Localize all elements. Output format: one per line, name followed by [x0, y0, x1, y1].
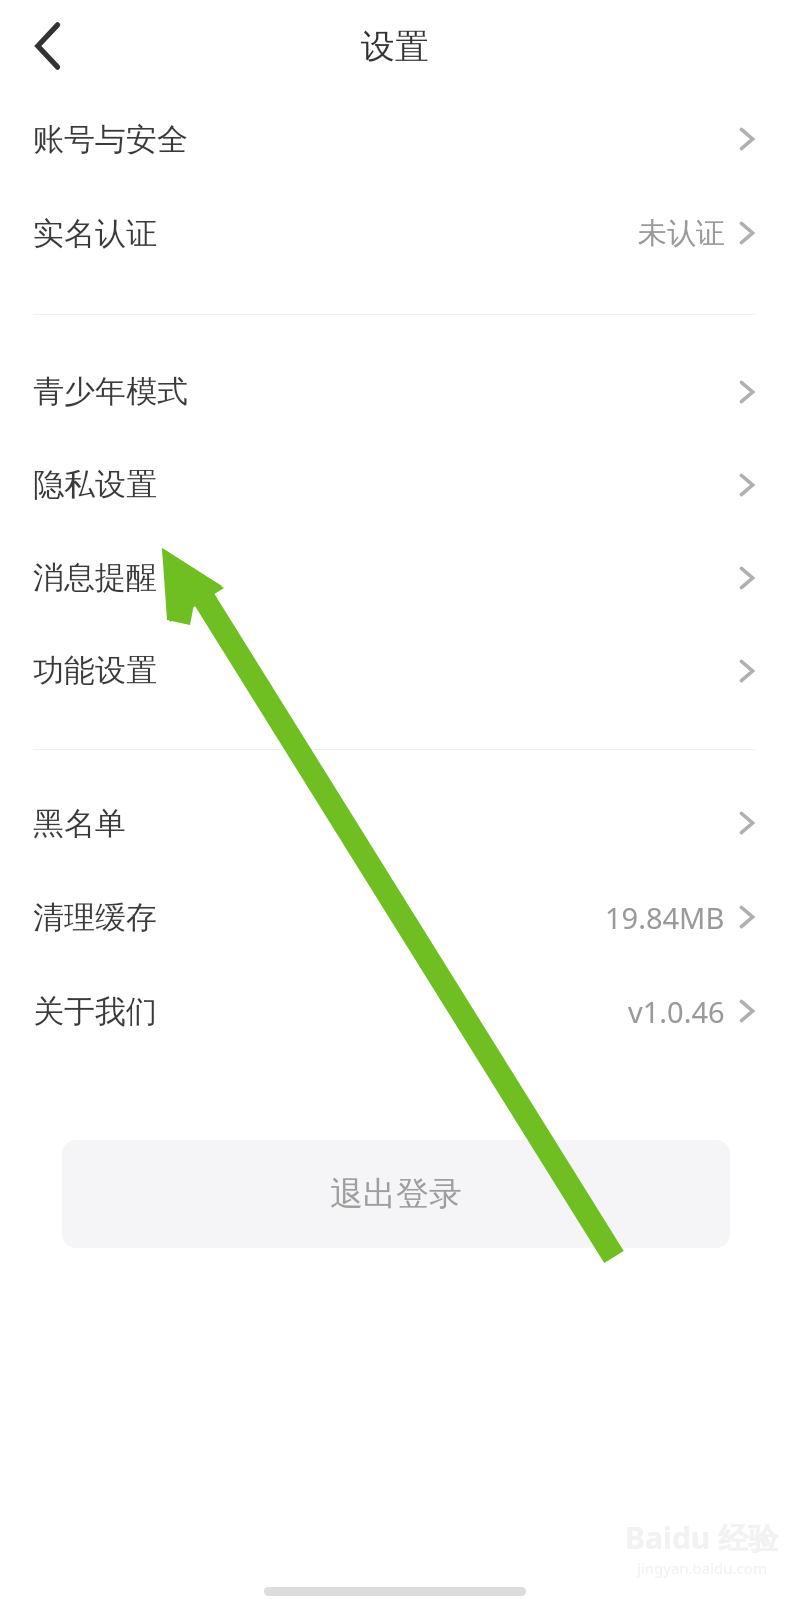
staticText: jingyan.baidu.com: [637, 1558, 767, 1578]
staticText: 青少年模式: [33, 372, 188, 411]
staticText: v1.0.46: [628, 992, 725, 1031]
staticText: 功能设置: [33, 651, 157, 690]
button[interactable]: Back: [14, 12, 82, 80]
button[interactable]: 清理缓存: [0, 870, 789, 964]
staticText: 隐私设置: [33, 465, 157, 504]
staticText: 19.84MB: [605, 898, 725, 937]
staticText: Baidu 经验: [625, 1517, 779, 1558]
button[interactable]: 账号与安全: [0, 92, 789, 186]
staticText: 消息提醒: [33, 558, 157, 597]
button[interactable]: 隐私设置: [0, 438, 789, 531]
button[interactable]: 退出登录: [62, 1140, 730, 1248]
staticText: 退出登录: [330, 1173, 462, 1215]
staticText: 设置: [361, 25, 429, 68]
staticText: 黑名单: [33, 804, 126, 843]
staticText: 关于我们: [33, 992, 157, 1031]
staticText: 未认证: [638, 215, 725, 252]
button[interactable]: 关于我们: [0, 964, 789, 1058]
button[interactable]: 功能设置: [0, 624, 789, 717]
button[interactable]: 青少年模式: [0, 345, 789, 438]
staticText: 账号与安全: [33, 120, 188, 159]
button[interactable]: 消息提醒: [0, 531, 789, 624]
button[interactable]: 黑名单: [0, 776, 789, 870]
staticText: 清理缓存: [33, 898, 157, 937]
staticText: 实名认证: [33, 214, 157, 253]
button[interactable]: 实名认证: [0, 186, 789, 280]
